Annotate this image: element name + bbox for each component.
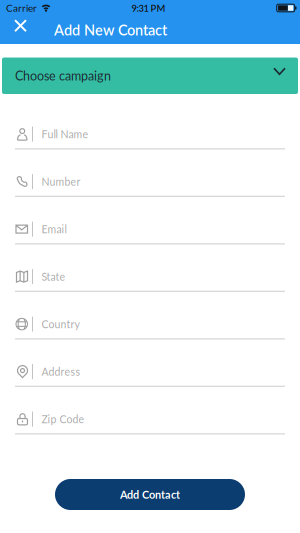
button[interactable]: Add Contact (55, 479, 245, 510)
button[interactable]: Country (0, 292, 300, 339)
staticText: Email (41, 223, 66, 235)
staticText: Number (41, 175, 80, 188)
staticText: 9:31 PM (131, 2, 165, 14)
staticText: Choose campaign (15, 68, 111, 83)
staticText: State (41, 270, 65, 283)
button[interactable]: Full Name (0, 102, 300, 149)
button[interactable] (0, 24, 35, 35)
button[interactable]: Number (0, 149, 300, 197)
staticText: Carrier (6, 2, 37, 14)
staticText: Add Contact (120, 488, 180, 501)
staticText: Full Name (41, 128, 88, 140)
staticText: Add New Contact (54, 21, 167, 39)
button[interactable]: Address (0, 339, 300, 387)
staticText: Address (41, 365, 80, 378)
button[interactable]: State (0, 244, 300, 292)
button[interactable]: Email (0, 197, 300, 244)
staticText: Zip Code (41, 413, 84, 425)
button[interactable]: Zip Code (0, 387, 300, 434)
button[interactable]: Choose campaign (0, 57, 300, 94)
staticText: Country (41, 318, 79, 330)
